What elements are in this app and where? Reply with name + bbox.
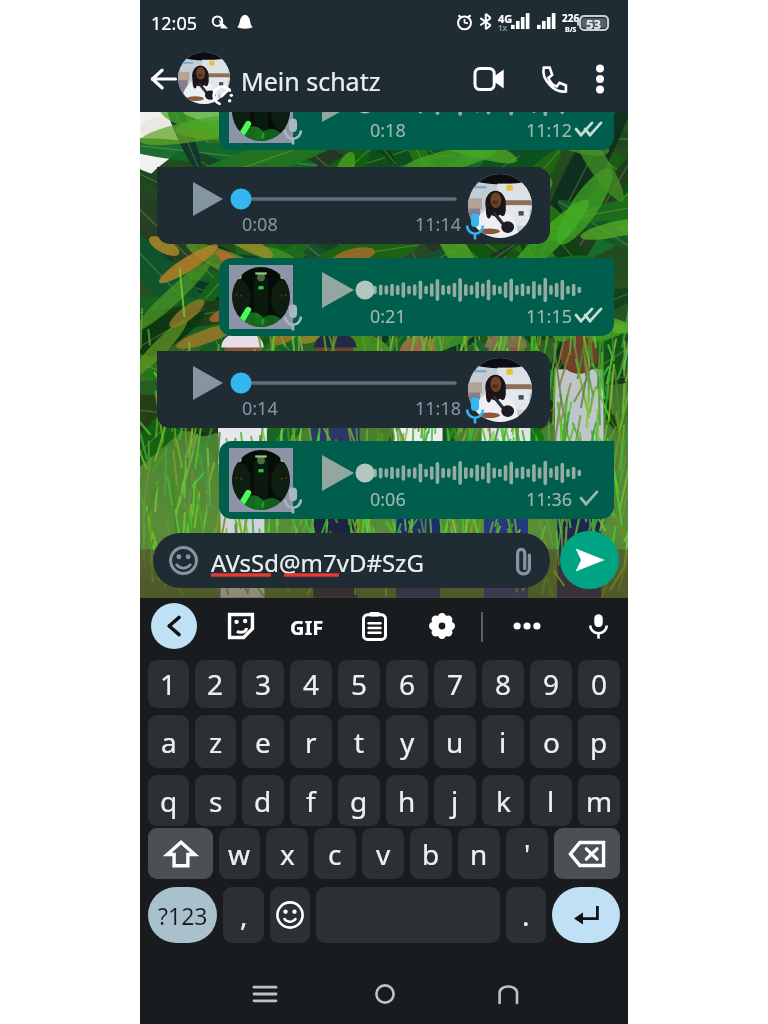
staticText: Mein schatz (241, 64, 381, 98)
button[interactable]: 1 (148, 660, 189, 708)
staticText: 11:12 (526, 118, 573, 143)
button[interactable]: j (434, 775, 476, 826)
button[interactable]: g (338, 775, 380, 826)
staticText: u (446, 723, 464, 761)
button[interactable]: ' (506, 828, 548, 879)
staticText: 0:08 (242, 212, 278, 237)
button[interactable]: Video call (465, 55, 513, 103)
staticText: l (547, 782, 555, 820)
staticText: w (228, 835, 251, 873)
button[interactable]: n (458, 828, 500, 879)
button[interactable]: 0:08 (157, 167, 550, 244)
staticText: 2 (207, 665, 224, 703)
button[interactable]: x (266, 828, 308, 879)
button[interactable]: Back (143, 54, 185, 104)
staticText: p (590, 723, 608, 761)
button[interactable]: i (482, 715, 524, 768)
button[interactable]: Settings (421, 605, 463, 647)
staticText: h (398, 782, 416, 820)
staticText: 4 (303, 665, 320, 703)
button[interactable]: d (242, 775, 284, 826)
button[interactable]: q (148, 775, 189, 826)
button[interactable]: Voice call (529, 55, 577, 103)
button[interactable]: b (410, 828, 452, 879)
button[interactable]: 0:06 (219, 441, 614, 519)
button[interactable]: Send (560, 531, 619, 589)
staticText: ' (524, 835, 531, 873)
staticText: i (499, 723, 507, 761)
staticText: s (209, 782, 223, 820)
button[interactable]: 4 (290, 660, 332, 708)
staticText: z (209, 723, 223, 761)
staticText: x (280, 835, 295, 873)
button[interactable]: ?123 (148, 887, 217, 943)
button[interactable]: r (290, 715, 332, 768)
button[interactable]: More options (578, 57, 622, 101)
button[interactable]: 7 (434, 660, 476, 708)
button[interactable]: Attach (505, 543, 541, 579)
staticText: 11:14 (415, 212, 462, 237)
staticText: m (586, 782, 613, 820)
staticText: 0:21 (370, 304, 406, 329)
button[interactable]: Shift (148, 828, 213, 879)
button[interactable]: k (482, 775, 524, 826)
button[interactable]: a (148, 715, 189, 768)
button[interactable]: More (506, 605, 548, 647)
button[interactable]: t (338, 715, 380, 768)
button[interactable]: 0:21 (219, 258, 614, 336)
button[interactable]: h (386, 775, 428, 826)
button[interactable]: c (314, 828, 356, 879)
button[interactable]: , (223, 887, 264, 943)
staticText: a (161, 723, 177, 761)
staticText: 226 (562, 11, 580, 25)
button[interactable]: Enter (552, 887, 620, 943)
staticText: GIF (290, 614, 324, 641)
staticText: 0:06 (370, 487, 406, 512)
button[interactable]: 0 (578, 660, 620, 708)
button[interactable]: w (219, 828, 260, 879)
button[interactable]: 8 (482, 660, 524, 708)
button[interactable]: Clipboard (353, 605, 395, 647)
button[interactable]: v (362, 828, 404, 879)
staticText: c (328, 835, 342, 873)
staticText: v (376, 835, 391, 873)
staticText: 0:18 (370, 118, 406, 143)
button[interactable]: p (578, 715, 620, 768)
button[interactable]: AVsSd@m7vD#SzG (153, 533, 550, 588)
button[interactable]: Back (482, 968, 534, 1020)
staticText: d (254, 782, 272, 820)
staticText: 0 (591, 665, 608, 703)
button[interactable]: Home (359, 968, 411, 1020)
button[interactable]: Close keyboard (151, 603, 197, 649)
staticText: 1x (498, 22, 508, 33)
button[interactable]: o (530, 715, 572, 768)
button[interactable]: e (242, 715, 284, 768)
button[interactable]: s (195, 775, 236, 826)
button[interactable]: f (290, 775, 332, 826)
button[interactable]: 0:18 (219, 112, 614, 150)
staticText: y (400, 723, 415, 761)
staticText: B/S (565, 25, 577, 35)
button[interactable]: 6 (386, 660, 428, 708)
button[interactable]: 0:14 (157, 351, 550, 428)
button[interactable]: Stickers (220, 605, 262, 647)
button[interactable]: Emoji (270, 887, 310, 943)
button[interactable]: Voice input (577, 605, 619, 647)
button[interactable]: y (386, 715, 428, 768)
staticText: ?123 (158, 900, 208, 931)
button[interactable]: z (195, 715, 236, 768)
button[interactable]: 3 (242, 660, 284, 708)
staticText: r (305, 723, 317, 761)
button[interactable]: . (506, 887, 546, 943)
button[interactable]: u (434, 715, 476, 768)
button[interactable]: 5 (338, 660, 380, 708)
button[interactable]: Backspace (554, 828, 620, 879)
staticText: 11:15 (526, 304, 573, 329)
button[interactable]: Recents (239, 968, 291, 1020)
button[interactable]: 2 (195, 660, 236, 708)
staticText: 11:36 (526, 487, 573, 512)
button[interactable]: m (578, 775, 620, 826)
button[interactable]: l (530, 775, 572, 826)
button[interactable]: 9 (530, 660, 572, 708)
